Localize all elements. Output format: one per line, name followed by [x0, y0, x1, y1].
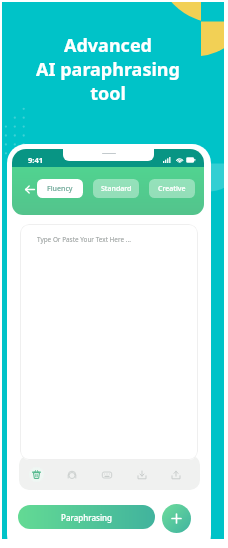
button[interactable]: Delete [29, 467, 44, 482]
button[interactable]: Share [168, 467, 183, 482]
button[interactable]: Support [64, 467, 79, 482]
staticText: Creative [158, 184, 186, 194]
button[interactable]: Type Or Paste Your Text Here ... [20, 224, 198, 460]
staticText: Fluency [47, 184, 73, 194]
staticText: Paraphrasing [61, 512, 113, 523]
staticText: 9:41 [28, 155, 44, 165]
staticText: Type Or Paste Your Text Here ... [37, 235, 131, 244]
button[interactable]: Download [134, 467, 149, 482]
button[interactable]: Keyboard [99, 467, 114, 482]
button[interactable]: Standard [93, 179, 139, 198]
button[interactable]: Paraphrasing [18, 505, 155, 529]
staticText: Advanced AI paraphrasing tool [36, 33, 180, 105]
button[interactable]: Fluency [37, 179, 83, 198]
staticText: Standard [101, 184, 132, 194]
button[interactable]: Creative [149, 179, 195, 198]
button[interactable]: Back [21, 181, 37, 197]
button[interactable]: Add [162, 504, 191, 533]
